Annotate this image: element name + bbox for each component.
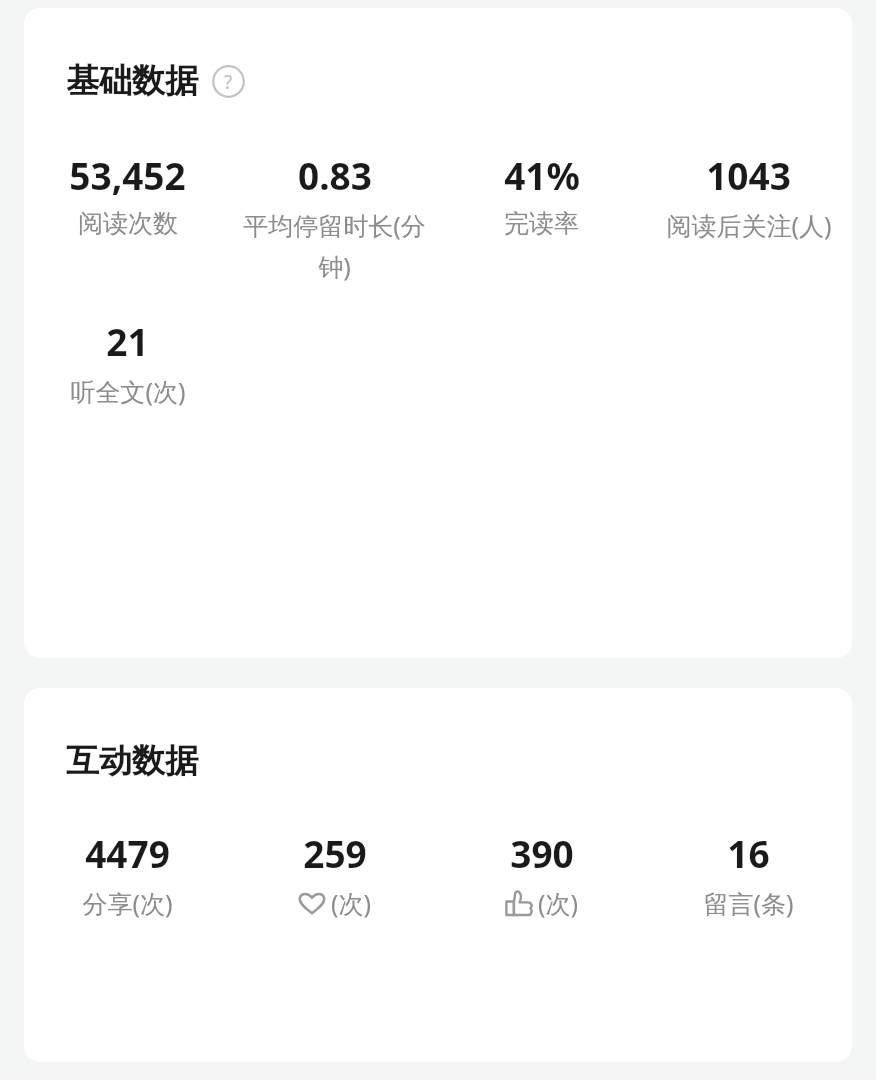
button[interactable]: 16 <box>645 828 852 920</box>
staticText: 4479 <box>85 828 170 878</box>
staticText: 阅读后关注(人) <box>666 208 832 242</box>
staticText: (次) <box>538 886 579 920</box>
staticText: 16 <box>727 828 770 878</box>
staticText: 互动数据 <box>66 740 198 782</box>
button[interactable]: 21 <box>24 316 231 408</box>
staticText: 259 <box>303 828 367 878</box>
button[interactable]: 1043 <box>645 150 852 242</box>
staticText: 390 <box>510 828 574 878</box>
staticText: 0.83 <box>298 150 372 200</box>
button[interactable]: 390 <box>438 828 645 920</box>
staticText: ? <box>224 69 233 95</box>
staticText: 基础数据 <box>66 60 198 102</box>
staticText: 听全文(次) <box>70 374 186 408</box>
staticText: 53,452 <box>69 150 186 200</box>
staticText: (次) <box>331 886 372 920</box>
staticText: 41% <box>504 150 580 200</box>
staticText: 平均停留时长(分钟) <box>237 208 432 284</box>
button[interactable]: 4479 <box>24 828 231 920</box>
staticText: 阅读次数 <box>78 208 178 239</box>
staticText: 留言(条) <box>703 886 794 920</box>
staticText: 21 <box>106 316 149 366</box>
button[interactable]: 53,452 <box>24 150 231 239</box>
button[interactable]: 259 <box>231 828 438 920</box>
staticText: 分享(次) <box>82 886 173 920</box>
button[interactable]: 帮助说明 <box>212 65 245 98</box>
staticText: 1043 <box>706 150 791 200</box>
staticText: 完读率 <box>504 208 579 239</box>
button[interactable]: 0.83 <box>231 150 438 284</box>
button[interactable]: 41% <box>438 150 645 239</box>
